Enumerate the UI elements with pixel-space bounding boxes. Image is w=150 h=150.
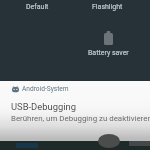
button[interactable]: Battery saver	[83, 31, 133, 57]
button[interactable]: Flashlight	[87, 0, 127, 13]
staticText: USB-Debugging	[11, 101, 76, 112]
staticText: Flashlight	[92, 3, 123, 11]
staticText: Battery saver	[88, 49, 129, 57]
staticText: Default	[26, 3, 49, 11]
staticText: Berühren, um Debugging zu deaktivieren	[11, 114, 150, 123]
button[interactable]: Default	[17, 0, 57, 13]
button[interactable]: Android-System	[0, 81, 150, 141]
staticText: Android-System	[22, 85, 69, 93]
other: Battery saver	[104, 31, 113, 45]
